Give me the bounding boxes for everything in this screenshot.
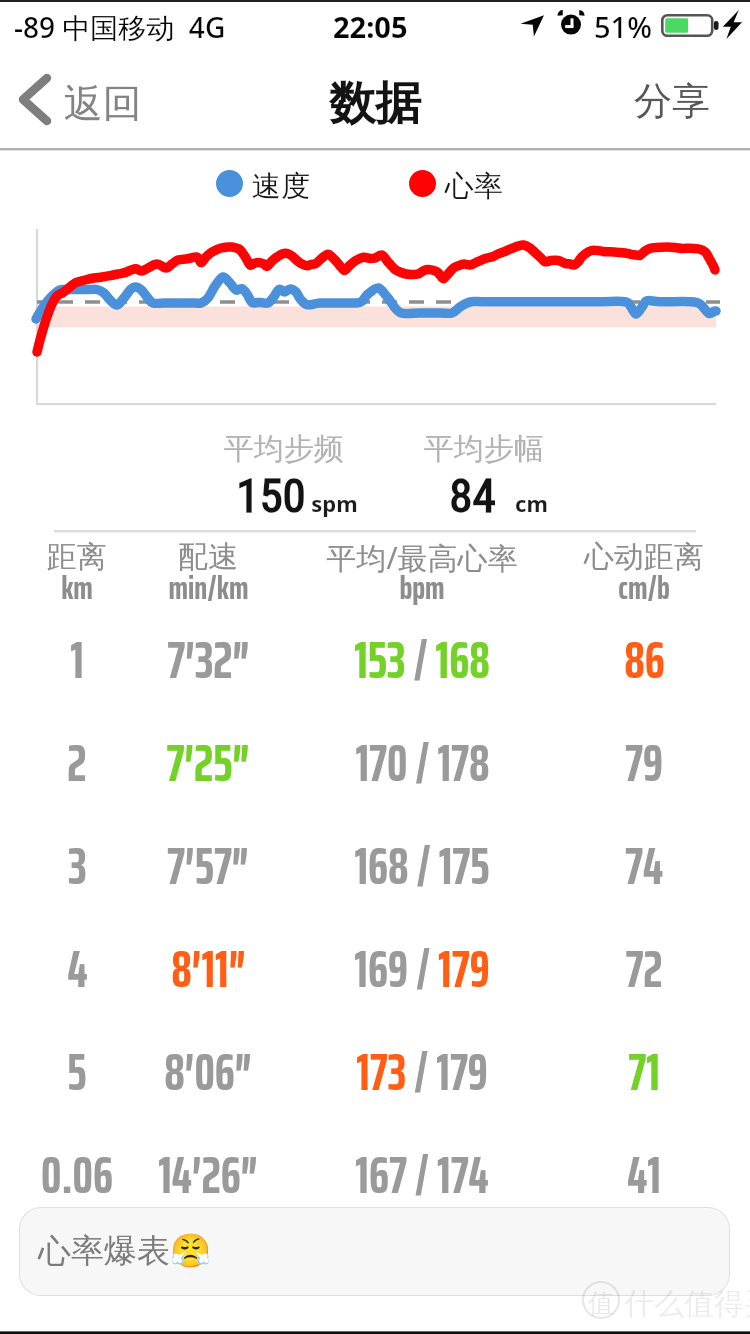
staticText: 0.06 [41,1135,113,1209]
staticText: 71 [628,1032,660,1106]
staticText: 4 [67,929,88,1003]
staticText: 167 / 174 [355,1135,489,1209]
button[interactable] [0,915,750,1018]
staticText: 22:05 [333,7,408,46]
staticText: 79 [625,723,663,797]
staticText: 170 / 178 [355,723,490,797]
button[interactable]: 分享 [614,50,750,151]
staticText: 平均/最高心率 [326,537,518,578]
staticText: 速度 [252,168,310,205]
button[interactable] [0,1018,750,1121]
staticText: 7′25″ [166,723,250,797]
button[interactable]: 心率爆表😤 [20,1208,729,1295]
staticText: 返回 [64,79,142,128]
staticText: -89 中国移动 4G [14,8,226,46]
staticText: 3 [68,826,87,900]
button[interactable] [0,709,750,812]
staticText: 84 [449,468,496,523]
staticText: 数据 [329,75,421,133]
staticText: 86 [624,620,665,694]
staticText: 心率爆表😤 [38,1230,212,1272]
staticText: cm/b [618,562,670,614]
button[interactable] [0,606,750,709]
staticText: 平均步幅 [424,430,544,468]
staticText: 74 [625,826,663,900]
staticText: 168 / 175 [354,826,490,900]
button[interactable]: 返回 [0,50,160,151]
staticText: 7′57″ [167,826,249,900]
staticText: 心动距离 [584,538,704,576]
staticText: 5 [67,1032,87,1106]
staticText: 8′11″ [171,929,246,1003]
staticText: 距离 [47,538,107,576]
staticText: 41 [627,1135,661,1209]
staticText: 150 [236,468,306,523]
staticText: bpm [399,562,445,614]
staticText: min/km [168,562,249,614]
staticText: 2 [67,723,87,797]
staticText: 平均步频 [224,430,344,468]
staticText: 14′26″ [158,1135,258,1209]
staticText: 配速 [178,538,238,576]
button[interactable] [0,1121,750,1224]
staticText: 心率 [445,168,503,205]
staticText: 173 / 179 [356,1032,488,1106]
staticText: 分享 [634,77,710,125]
staticText: spm [311,488,358,518]
staticText: 7′32″ [167,620,250,694]
staticText: 什么值得买 [624,1285,750,1323]
staticText: 51% [594,7,652,46]
staticText: 169 / 179 [354,929,490,1003]
staticText: 1 [70,620,84,694]
button[interactable] [0,812,750,915]
staticText: 153 / 168 [354,620,490,694]
staticText: km [61,562,93,614]
staticText: 72 [625,929,663,1003]
staticText: cm [515,488,548,518]
staticText: 值 [588,1287,614,1320]
staticText: 8′06″ [164,1032,252,1106]
